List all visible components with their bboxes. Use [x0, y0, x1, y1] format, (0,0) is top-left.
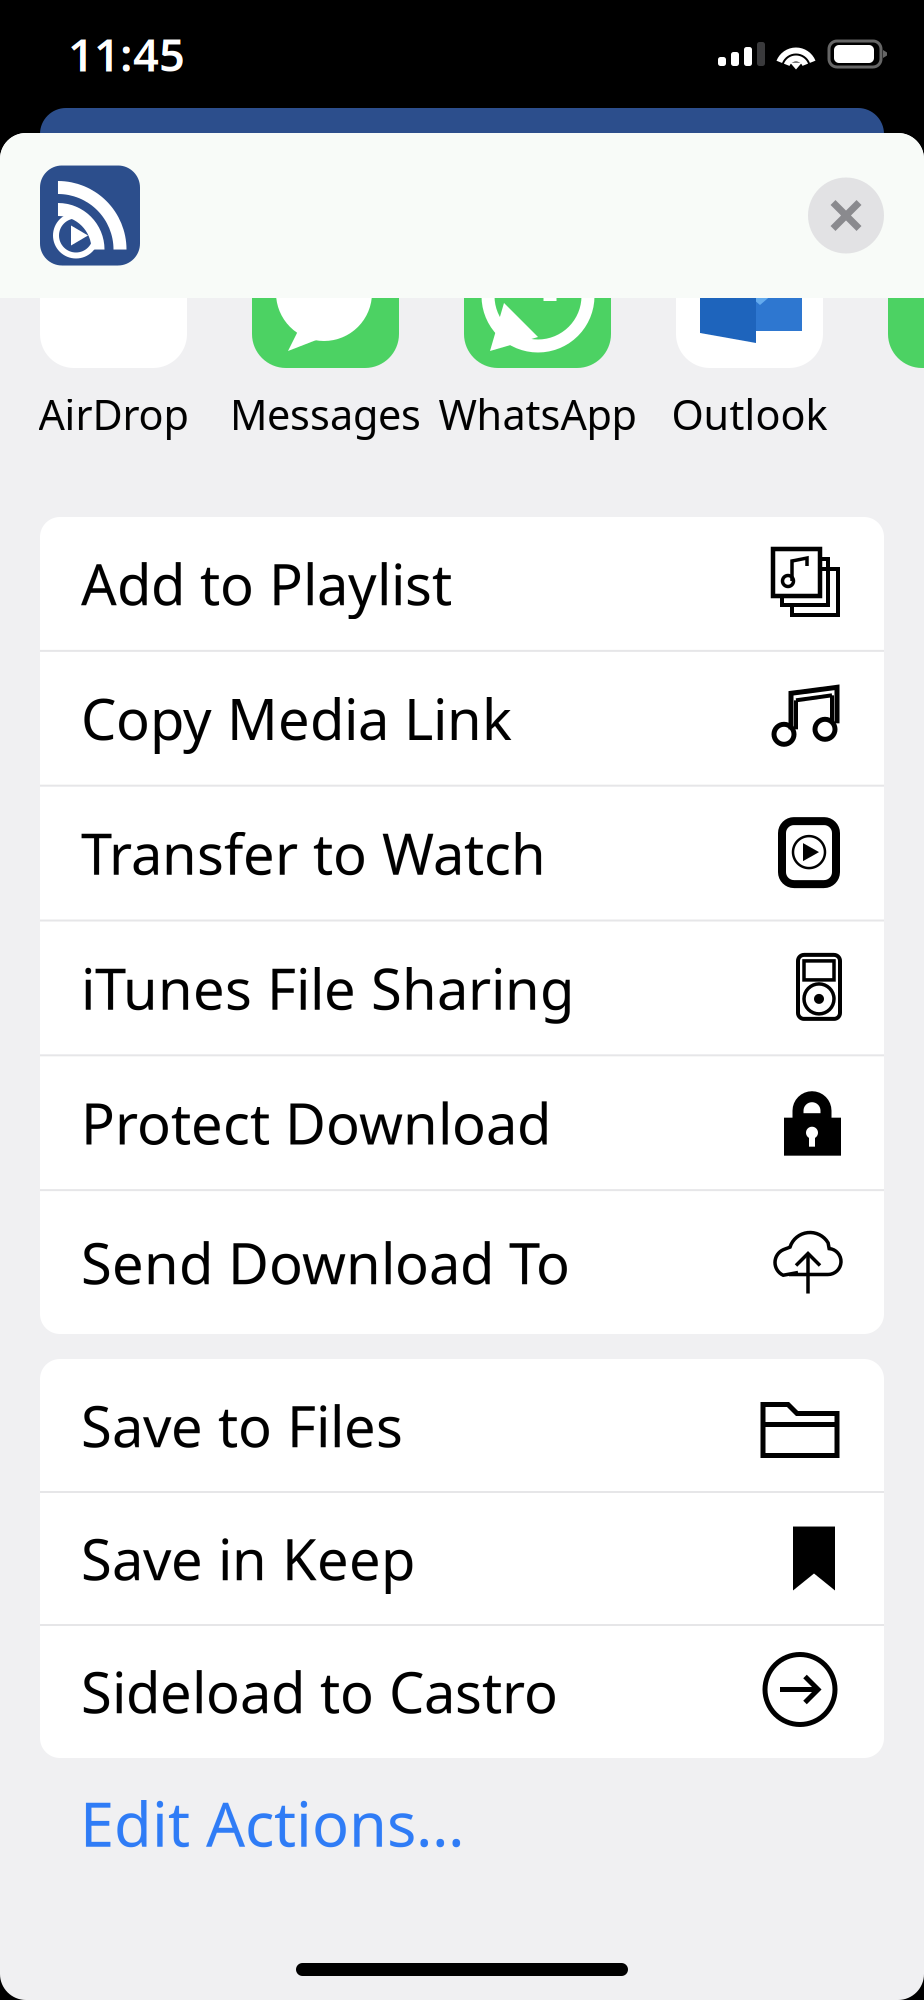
- staticText: AirDrop: [38, 387, 188, 441]
- staticText: iTunes File Sharing: [81, 951, 574, 1025]
- button[interactable]: Copy Media Link: [40, 652, 884, 785]
- button[interactable]: Messages: [195, 386, 455, 442]
- staticText: Protect Download: [81, 1085, 551, 1160]
- button[interactable]: Save in Keep: [40, 1493, 884, 1624]
- staticText: Send Download To: [81, 1225, 570, 1300]
- button[interactable]: Close: [808, 177, 884, 253]
- button[interactable]: AirDrop: [0, 386, 243, 442]
- staticText: Save in Keep: [81, 1521, 415, 1596]
- staticText: Transfer to Watch: [81, 816, 546, 890]
- button[interactable]: Outlook: [619, 386, 879, 442]
- staticText: Sideload to Castro: [81, 1654, 558, 1729]
- staticText: Messages: [230, 387, 421, 441]
- button[interactable]: Sideload to Castro: [40, 1626, 884, 1757]
- button[interactable]: Send Download To: [40, 1191, 884, 1334]
- button[interactable]: Add to Playlist: [40, 517, 884, 650]
- staticText: 11:45: [68, 24, 185, 84]
- button[interactable]: Transfer to Watch: [40, 787, 884, 919]
- staticText: Outlook: [671, 387, 827, 441]
- button[interactable]: Save to Files: [40, 1360, 884, 1491]
- staticText: WhatsApp: [438, 387, 636, 441]
- button[interactable]: Protect Download: [40, 1056, 884, 1189]
- button[interactable]: Edit Actions…: [0, 1758, 924, 1888]
- staticText: Save to Files: [81, 1388, 403, 1463]
- button[interactable]: WhatsApp: [407, 386, 667, 442]
- staticText: Edit Actions…: [80, 1782, 465, 1864]
- button[interactable]: iTunes File Sharing: [40, 921, 884, 1054]
- staticText: Copy Media Link: [81, 681, 512, 755]
- staticText: Add to Playlist: [81, 546, 452, 621]
